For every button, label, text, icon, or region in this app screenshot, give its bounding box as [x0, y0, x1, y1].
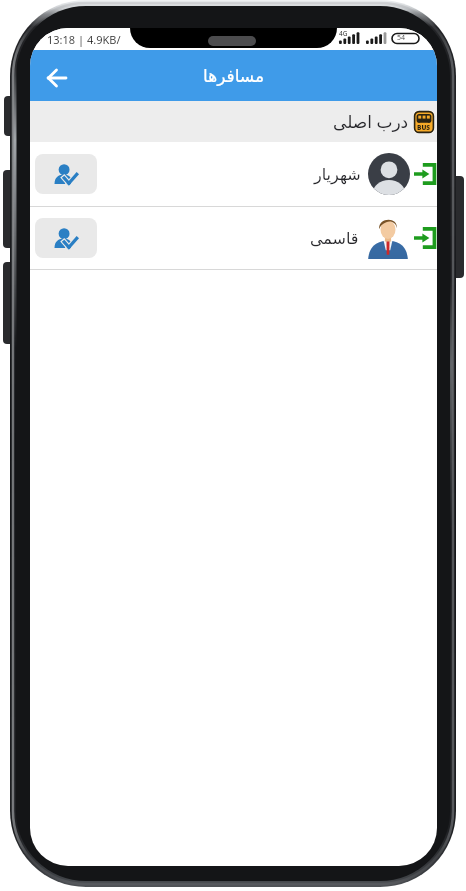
button[interactable]	[35, 154, 97, 194]
button[interactable]	[40, 61, 74, 95]
button[interactable]: شهریار	[30, 142, 437, 206]
staticText: مسافرها	[203, 66, 265, 86]
staticText: درب اصلی	[333, 110, 409, 133]
staticText: 54	[397, 33, 406, 43]
button[interactable]: درب اصلی	[30, 101, 434, 142]
staticText: شهریار	[314, 165, 361, 184]
button[interactable]	[414, 227, 436, 249]
button[interactable]: قاسمی	[30, 207, 437, 269]
button[interactable]	[35, 218, 97, 258]
staticText: قاسمی	[310, 229, 359, 248]
staticText: 4G	[339, 29, 348, 38]
staticText: 13:18 | 4.9KB/	[47, 32, 121, 47]
staticText: BUS	[417, 123, 431, 132]
button[interactable]	[414, 163, 436, 185]
